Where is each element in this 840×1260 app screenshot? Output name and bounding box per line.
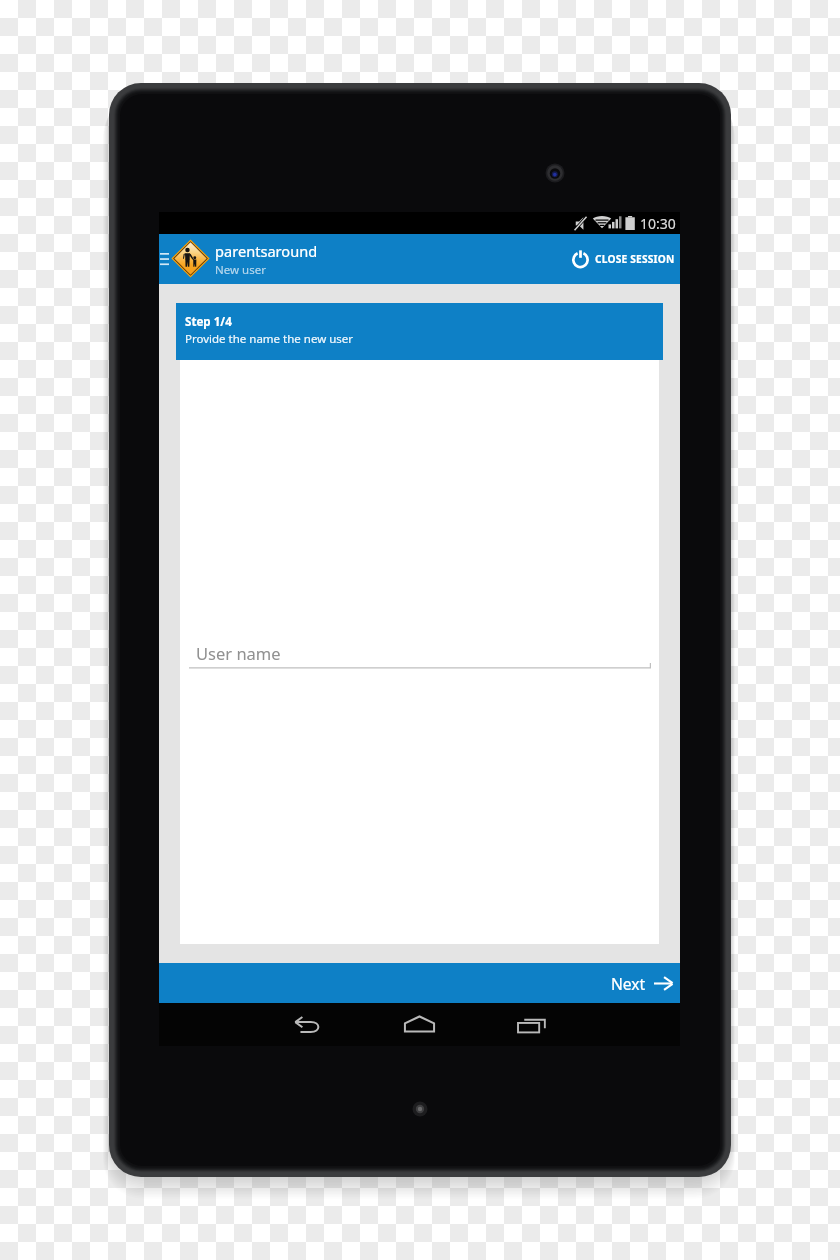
button[interactable]: User name bbox=[189, 634, 651, 670]
button[interactable]: Next bbox=[611, 963, 680, 1003]
staticText: 10:30 bbox=[640, 214, 676, 233]
button[interactable]: Open navigation menu bbox=[157, 247, 171, 271]
button[interactable]: CLOSE SESSION bbox=[568, 241, 679, 277]
button[interactable]: Recent apps bbox=[509, 1005, 553, 1045]
staticText: parentsaround bbox=[215, 241, 318, 261]
staticText: Next bbox=[611, 973, 646, 994]
staticText: Step 1/4 bbox=[185, 314, 232, 330]
staticText: Provide the name the new user bbox=[185, 331, 354, 347]
button[interactable]: Home bbox=[397, 1004, 441, 1044]
staticText: User name bbox=[196, 642, 281, 664]
staticText: New user bbox=[215, 262, 266, 278]
button[interactable]: Back bbox=[286, 1005, 330, 1045]
staticText: CLOSE SESSION bbox=[595, 252, 675, 266]
